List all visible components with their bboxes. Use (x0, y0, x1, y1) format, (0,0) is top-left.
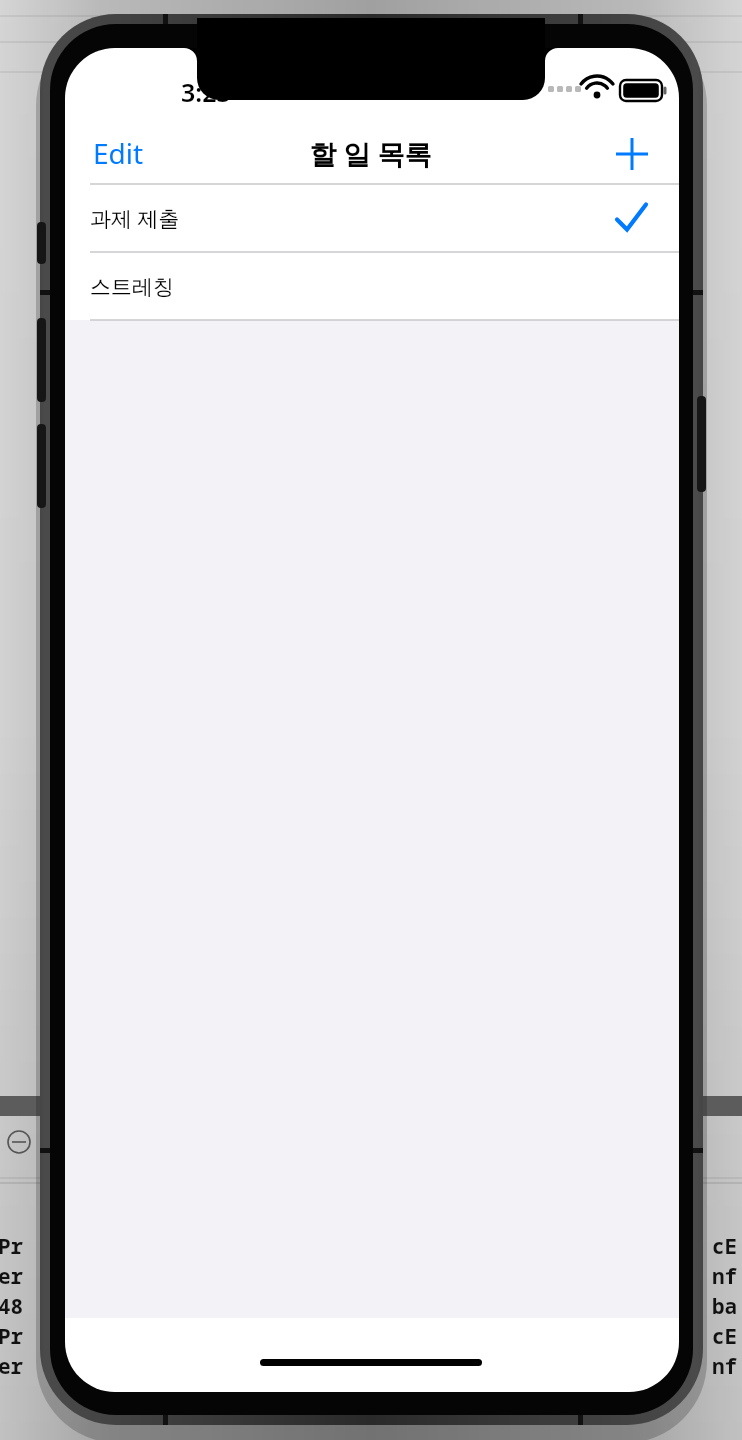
button[interactable] (65, 253, 679, 320)
button[interactable] (93, 130, 163, 176)
button[interactable]: Add item (608, 130, 656, 178)
button[interactable] (65, 185, 679, 252)
